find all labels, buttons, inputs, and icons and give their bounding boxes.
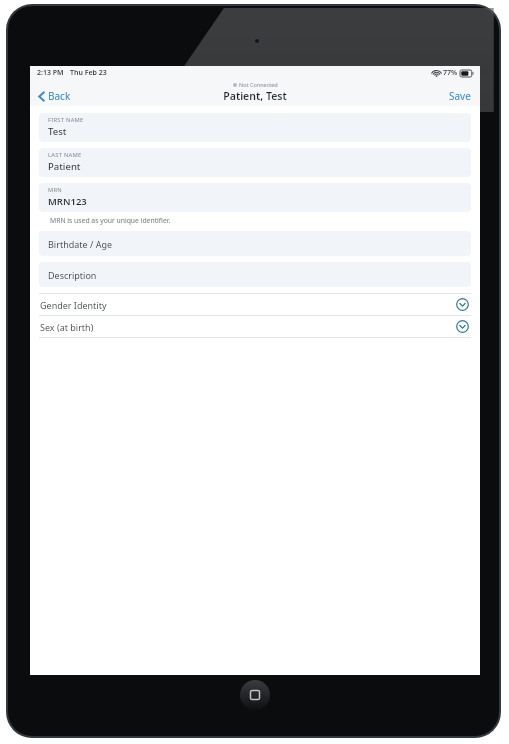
staticText: MRN is used as your unique identifier.: [50, 216, 171, 225]
staticText: Test: [48, 125, 67, 138]
staticText: 77%: [443, 68, 458, 78]
staticText: Patient: [48, 160, 81, 173]
staticText: FIRST NAME: [48, 116, 84, 124]
other: Expand Sex (at birth): [456, 320, 469, 333]
staticText: Patient, Test: [223, 89, 287, 103]
button[interactable]: MRN: [39, 183, 471, 212]
staticText: LAST NAME: [48, 151, 82, 159]
staticText: Save: [449, 89, 471, 103]
button[interactable]: Gender Identity: [39, 294, 471, 315]
button[interactable]: LAST NAME: [39, 148, 471, 177]
staticText: Not Connected: [239, 81, 278, 88]
staticText: MRN: [48, 186, 63, 194]
staticText: Description: [48, 269, 97, 281]
staticText: Sex (at birth): [40, 321, 94, 333]
button[interactable]: Back: [36, 88, 73, 104]
button[interactable]: Sex (at birth): [39, 316, 471, 337]
staticText: MRN123: [48, 195, 87, 208]
other: Expand Gender Identity: [456, 298, 469, 311]
button[interactable]: FIRST NAME: [39, 113, 471, 142]
button[interactable]: Description: [39, 262, 471, 287]
staticText: 2:13 PM: [37, 68, 64, 78]
button[interactable]: Birthdate / Age: [39, 231, 471, 256]
staticText: Back: [48, 89, 71, 103]
staticText: Birthdate / Age: [48, 238, 112, 250]
staticText: Thu Feb 23: [70, 68, 107, 78]
button[interactable]: Save: [446, 88, 474, 104]
staticText: Gender Identity: [40, 299, 107, 311]
